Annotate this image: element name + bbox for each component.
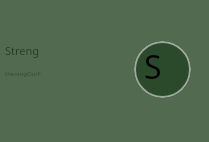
staticText: Strengthening <box>5 43 43 58</box>
button[interactable]: Profile <box>134 41 191 98</box>
staticText: S <box>144 45 162 89</box>
staticText: theningOurFuture <box>5 70 43 78</box>
